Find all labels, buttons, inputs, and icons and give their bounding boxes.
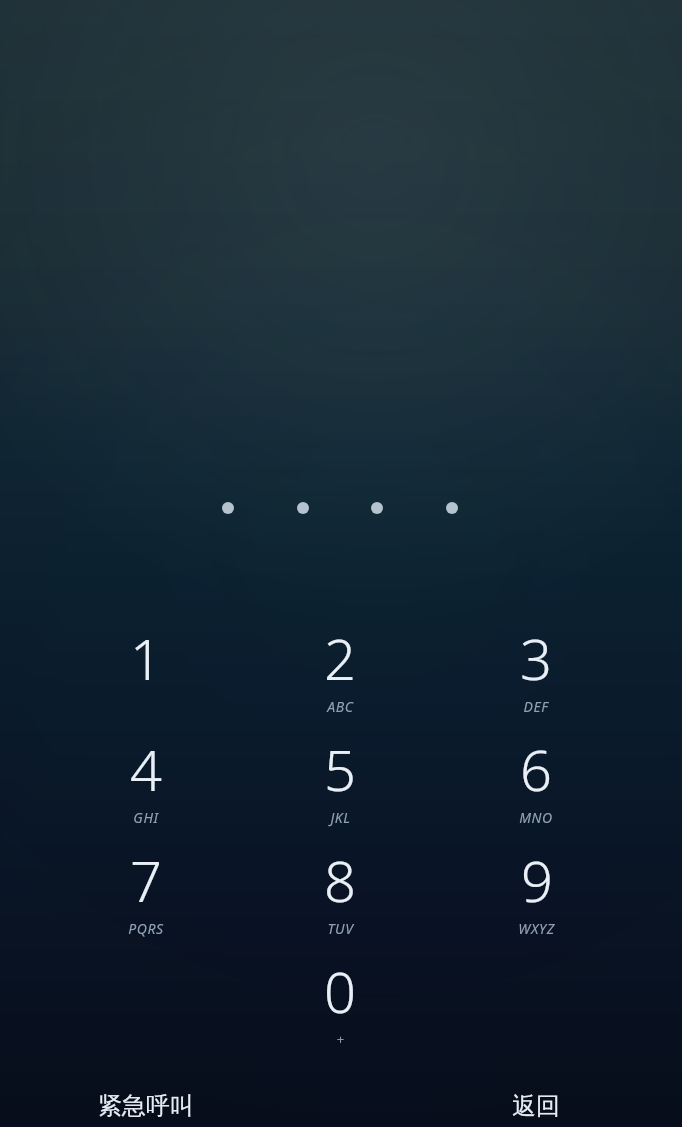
button[interactable]: 0 (265, 953, 415, 1057)
button[interactable]: 返回 (494, 1083, 578, 1127)
button[interactable]: 8 (265, 842, 415, 946)
staticText: JKL (330, 808, 351, 827)
button[interactable]: 2 (265, 620, 415, 724)
staticText: PQRS (128, 919, 164, 938)
staticText: ABC (327, 697, 354, 716)
button[interactable]: 6 (461, 731, 611, 835)
button[interactable]: 4 (71, 731, 221, 835)
staticText: WXYZ (518, 919, 555, 938)
staticText: 3 (520, 620, 552, 696)
button[interactable]: 1 (71, 620, 221, 724)
staticText: 0 (324, 953, 356, 1029)
button[interactable]: 3 (461, 620, 611, 724)
staticText: 7 (130, 842, 162, 918)
staticText: 4 (130, 731, 162, 807)
button[interactable]: 9 (461, 842, 611, 946)
staticText: 5 (324, 731, 356, 807)
staticText: 2 (324, 620, 356, 696)
button[interactable]: 紧急呼叫 (80, 1083, 212, 1127)
staticText: 1 (130, 620, 162, 696)
staticText: 9 (521, 842, 553, 918)
staticText: DEF (523, 697, 549, 716)
button[interactable]: 7 (71, 842, 221, 946)
staticText: 8 (324, 842, 356, 918)
staticText: GHI (133, 808, 159, 827)
staticText: + (336, 1030, 345, 1048)
staticText: 返回 (512, 1091, 560, 1121)
staticText: MNO (519, 808, 553, 827)
staticText: 6 (520, 731, 552, 807)
staticText: TUV (327, 919, 354, 938)
staticText: 紧急呼叫 (98, 1091, 194, 1121)
button[interactable]: 5 (265, 731, 415, 835)
